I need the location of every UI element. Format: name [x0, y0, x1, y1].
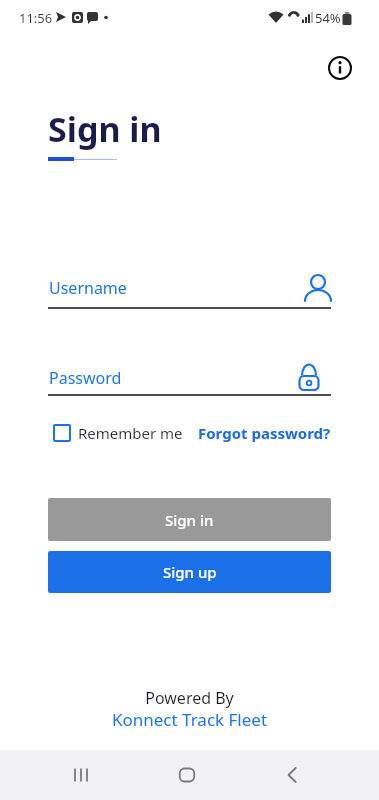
staticText: Sign in [48, 106, 162, 152]
button[interactable]: Username [48, 262, 331, 309]
staticText: 54% [315, 9, 341, 27]
staticText: Remember me [78, 423, 183, 443]
staticText: Password [49, 367, 122, 389]
button[interactable] [63, 757, 99, 793]
staticText: Sign up [163, 562, 217, 582]
button[interactable] [326, 54, 354, 82]
staticText: Powered By [0, 687, 379, 709]
button[interactable]: Sign in [48, 498, 331, 541]
button[interactable]: Password [48, 349, 331, 396]
staticText: Sign in [165, 510, 214, 530]
button[interactable]: Forgot password? [198, 423, 331, 443]
button[interactable]: Sign up [48, 551, 331, 593]
button[interactable] [275, 757, 311, 793]
staticText: 11:56 [19, 9, 53, 27]
button[interactable]: Konnect Track Fleet [0, 708, 379, 731]
staticText: Username [49, 277, 127, 299]
button[interactable]: Remember me [48, 423, 183, 443]
button[interactable] [169, 757, 205, 793]
